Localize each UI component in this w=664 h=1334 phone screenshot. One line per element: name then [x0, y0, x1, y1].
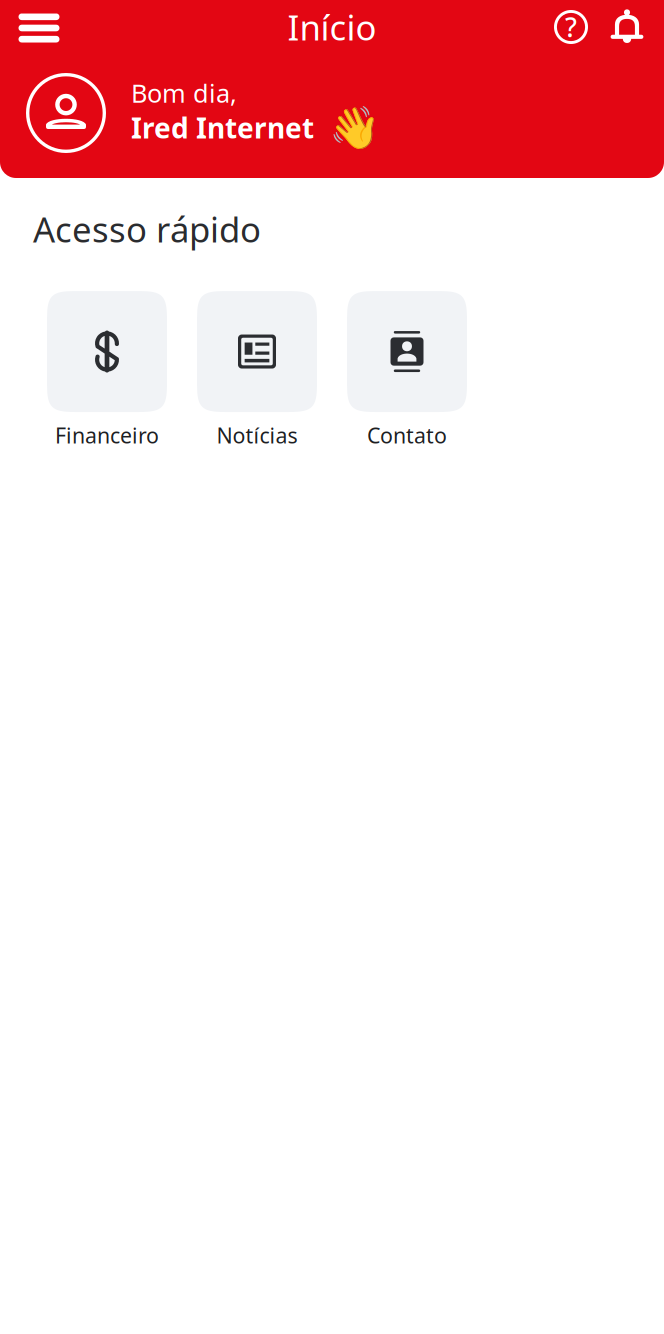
staticText: Contato: [367, 421, 447, 449]
staticText: 👋: [329, 104, 380, 151]
button[interactable]: Notificações: [599, 0, 655, 54]
button[interactable]: Menu: [0, 0, 78, 56]
button[interactable]: Ajuda: [543, 0, 599, 54]
staticText: Acesso rápido: [33, 206, 261, 252]
button[interactable]: Notícias: [197, 291, 317, 449]
button[interactable]: Financeiro: [47, 291, 167, 449]
staticText: Bom dia,: [131, 76, 237, 110]
staticText: ?: [565, 9, 577, 45]
staticText: Notícias: [216, 421, 297, 449]
staticText: Financeiro: [55, 421, 159, 449]
button[interactable]: Contato: [347, 291, 467, 449]
staticText: Início: [287, 4, 376, 50]
staticText: Ired Internet: [131, 109, 314, 146]
